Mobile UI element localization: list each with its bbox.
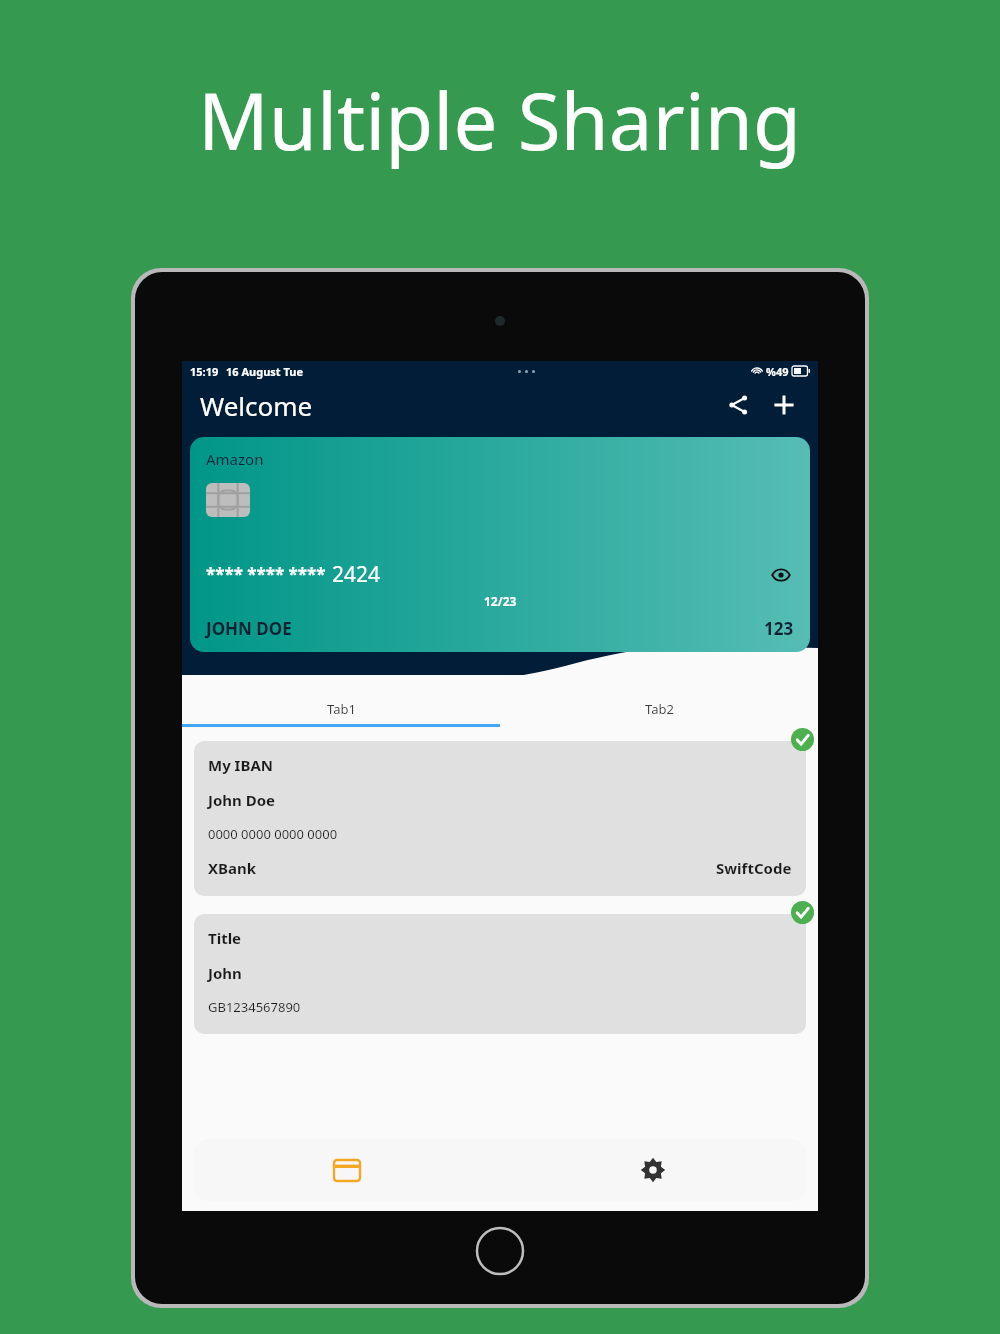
staticText: GB1234567890 xyxy=(208,998,301,1016)
button[interactable]: My IBAN xyxy=(194,741,806,896)
staticText: 15:19 xyxy=(190,364,219,379)
button[interactable]: Add xyxy=(764,385,804,425)
staticText: Amazon xyxy=(206,449,264,469)
button[interactable]: Show card number xyxy=(768,562,794,588)
button[interactable]: Amazon xyxy=(190,437,810,652)
button[interactable]: Settings xyxy=(500,1139,806,1201)
button[interactable]: Tab1 xyxy=(182,694,500,724)
button[interactable]: Share xyxy=(718,385,758,425)
staticText: %49 xyxy=(766,364,789,379)
staticText: 12/23 xyxy=(484,593,517,609)
staticText: 16 August Tue xyxy=(226,364,303,379)
staticText: 2424 xyxy=(332,560,381,589)
staticText: Tab2 xyxy=(645,700,674,718)
staticText: 123 xyxy=(764,617,794,640)
staticText: Welcome xyxy=(200,388,313,423)
staticText: John Doe xyxy=(208,790,276,810)
staticText: My IBAN xyxy=(208,755,273,775)
staticText: 0000 0000 0000 0000 xyxy=(208,825,338,843)
staticText: Tab1 xyxy=(327,700,356,718)
staticText: Multiple Sharing xyxy=(198,67,802,173)
button[interactable]: Tab2 xyxy=(500,694,818,724)
button[interactable]: Cards xyxy=(194,1139,500,1201)
staticText: John xyxy=(208,963,242,983)
button[interactable]: Title xyxy=(194,914,806,1034)
staticText: **** **** **** xyxy=(206,563,326,586)
staticText: XBank xyxy=(208,858,257,878)
staticText: Title xyxy=(208,928,242,948)
staticText: JOHN DOE xyxy=(206,617,292,640)
staticText: SwiftCode xyxy=(716,858,792,878)
